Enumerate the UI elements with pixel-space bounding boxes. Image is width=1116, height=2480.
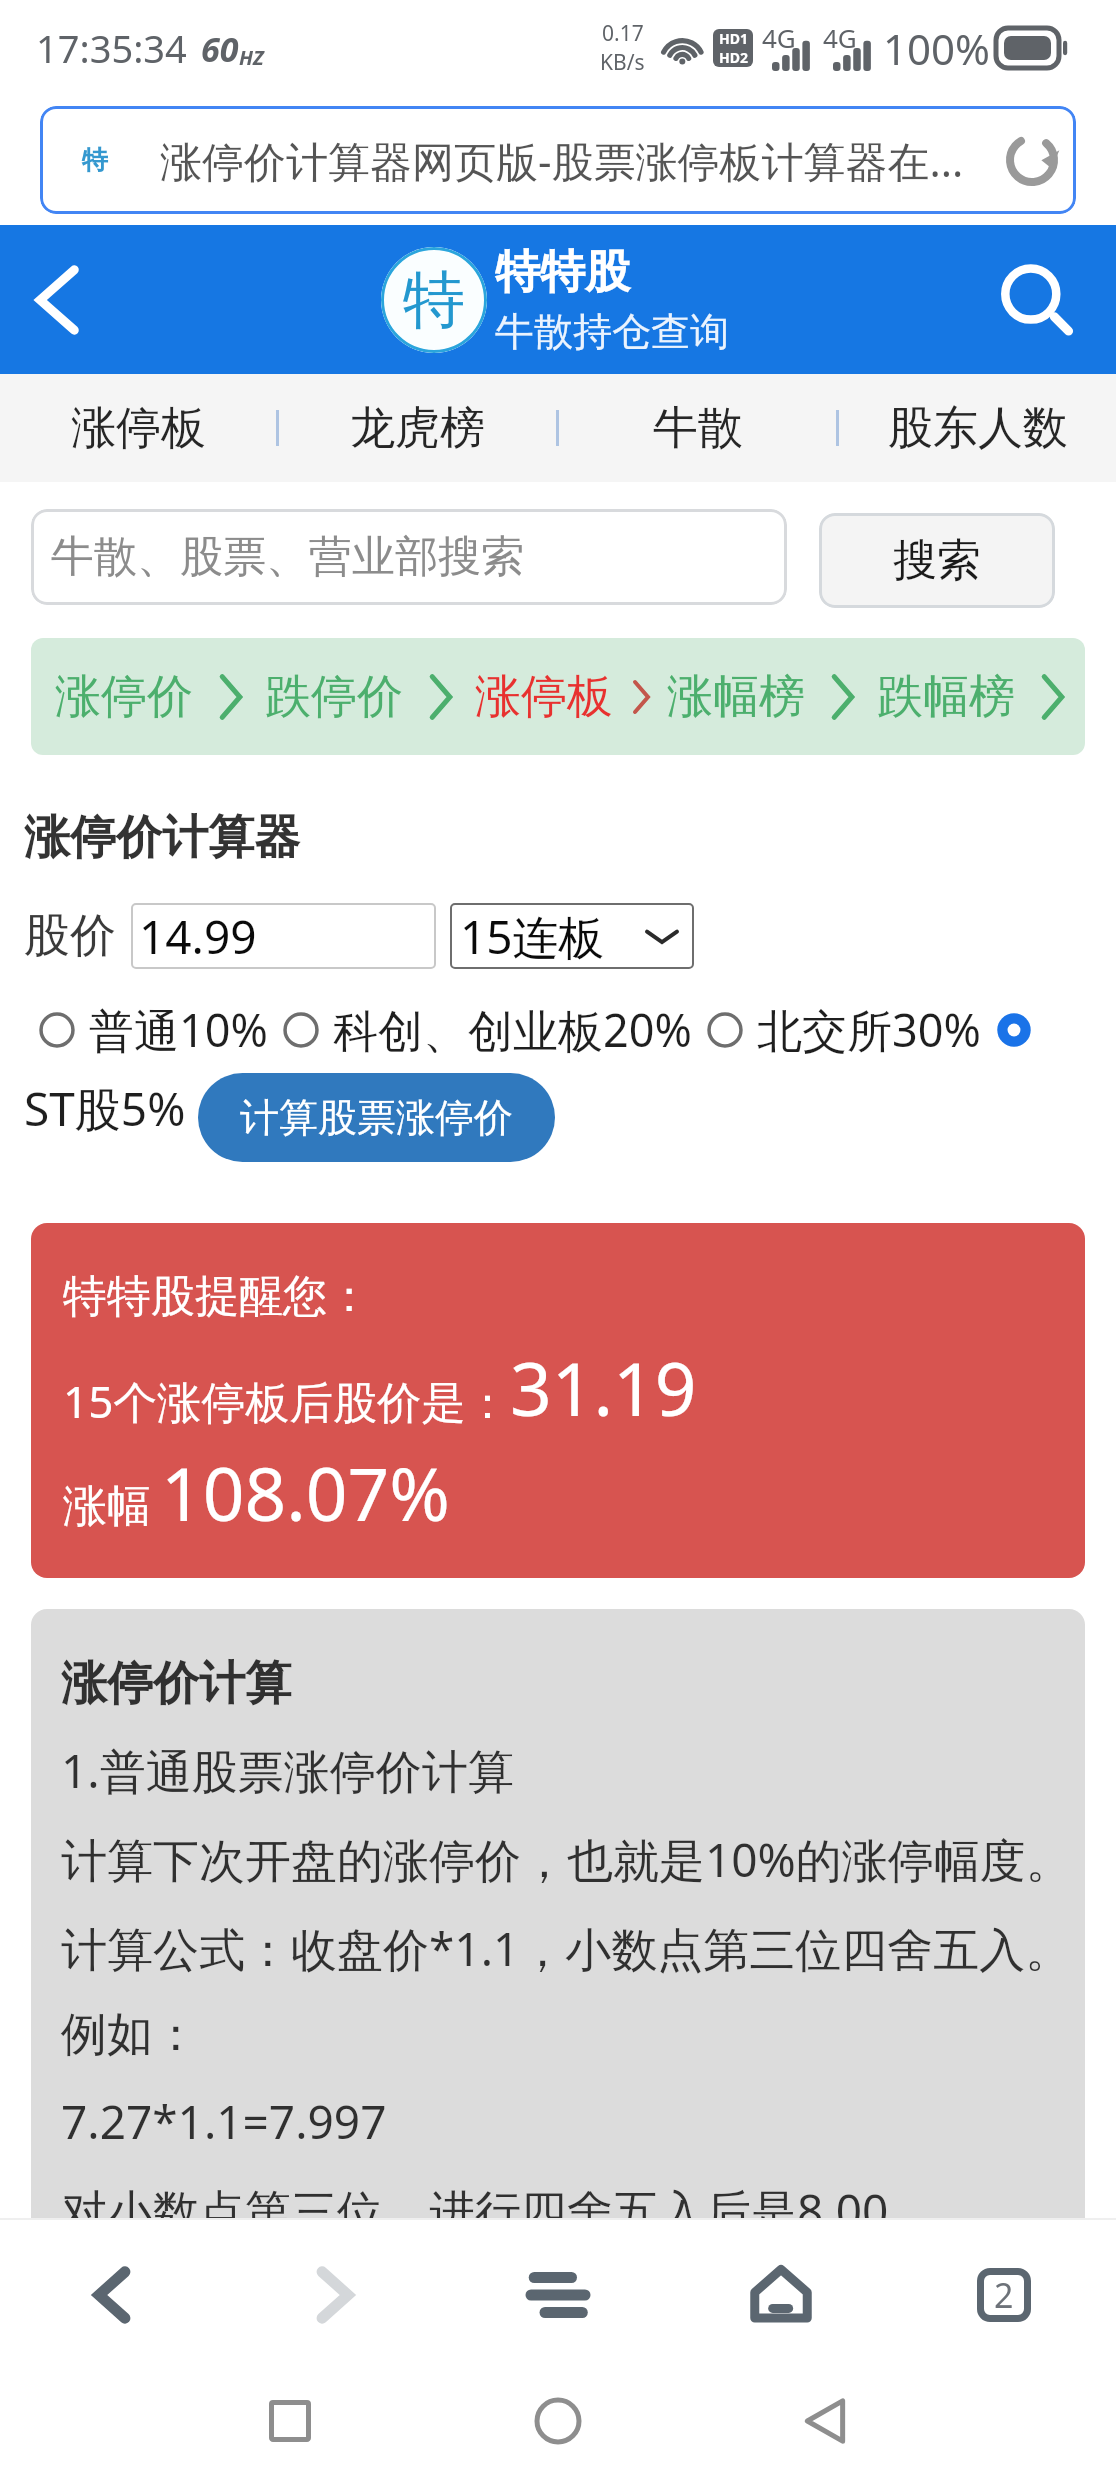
button[interactable] xyxy=(995,1011,1033,1049)
staticText: 31.19 xyxy=(510,1338,697,1437)
staticText: 60 xyxy=(201,26,239,72)
staticText: 搜索 xyxy=(893,533,981,588)
staticText: 股价 xyxy=(24,907,116,965)
staticText: 14.99 xyxy=(139,905,257,968)
button[interactable]: Back xyxy=(2,245,112,355)
staticText: 涨停价计算器网页版-股票涨停板计算器在... xyxy=(160,132,964,189)
button[interactable]: 搜索 xyxy=(819,513,1055,608)
staticText: HD1 xyxy=(719,29,748,48)
staticText: 计算股票涨停价 xyxy=(240,1093,513,1142)
button[interactable]: 股东人数 xyxy=(839,374,1116,482)
button[interactable]: 牛散、股票、营业部搜索 xyxy=(31,509,787,605)
staticText: 涨停价计算 xyxy=(61,1655,291,1713)
staticText: 17:35:34 xyxy=(36,22,187,74)
button[interactable]: 涨停价 xyxy=(53,668,195,726)
staticText: 15个涨停板后股价是： xyxy=(63,1371,510,1431)
staticText: 对小数点第三位，进行四舍五入后是8.00 xyxy=(61,2179,889,2242)
staticText: 4G xyxy=(823,20,857,55)
button[interactable] xyxy=(282,1011,320,1049)
button[interactable]: Recents xyxy=(235,2366,345,2476)
staticText: 计算下次开盘的涨停价，也就是10%的涨停幅度。 xyxy=(61,1828,1072,1891)
button[interactable]: 特 xyxy=(40,106,1076,214)
staticText: 涨停价计算器 xyxy=(24,809,300,867)
button[interactable]: 涨幅榜 xyxy=(665,668,807,726)
button[interactable]: 涨停板 xyxy=(473,668,615,726)
button[interactable]: Menu xyxy=(508,2245,608,2345)
staticText: 特特股提醒您： xyxy=(63,1269,371,1324)
staticText: 北交所30% xyxy=(757,999,981,1060)
staticText: 0.17 xyxy=(602,19,644,48)
staticText: 108.07% xyxy=(161,1443,451,1542)
button[interactable]: 龙虎榜 xyxy=(279,374,556,482)
button[interactable]: Search xyxy=(980,245,1090,355)
button[interactable]: 跌幅榜 xyxy=(875,668,1017,726)
button[interactable] xyxy=(706,1011,744,1049)
staticText: HZ xyxy=(239,44,264,71)
staticText: 龙虎榜 xyxy=(350,400,485,457)
staticText: 7.27*1.1=7.997 xyxy=(61,2090,387,2153)
staticText: 100% xyxy=(883,20,990,77)
staticText: 牛散 xyxy=(653,400,743,457)
staticText: 例如： xyxy=(61,2006,199,2064)
staticText: 普通10% xyxy=(89,999,268,1060)
button[interactable]: 14.99 xyxy=(131,903,436,969)
button[interactable]: 涨停板 xyxy=(0,374,276,482)
button[interactable]: 计算股票涨停价 xyxy=(198,1073,555,1162)
staticText: 牛散持仓查询 xyxy=(495,307,729,356)
staticText: 涨停板 xyxy=(71,400,206,457)
button[interactable]: Back xyxy=(770,2366,880,2476)
button[interactable]: 牛散 xyxy=(559,374,836,482)
staticText: 涨停板 xyxy=(475,668,613,726)
staticText: 涨停价 xyxy=(55,668,193,726)
button[interactable]: Forward xyxy=(285,2245,385,2345)
staticText: 4G xyxy=(762,20,796,55)
staticText: 特 xyxy=(403,261,465,339)
staticText: 跌幅榜 xyxy=(877,668,1015,726)
button[interactable]: Home xyxy=(731,2245,831,2345)
button[interactable]: 15连板 xyxy=(450,903,694,969)
button[interactable]: Back xyxy=(62,2245,162,2345)
staticText: 1.普通股票涨停价计算 xyxy=(61,1739,514,1802)
staticText: 跌停价 xyxy=(265,668,403,726)
staticText: HD2 xyxy=(719,48,748,67)
staticText: 计算公式：收盘价*1.1，小数点第三位四舍五入。 xyxy=(61,1917,1072,1980)
staticText: 特 xyxy=(82,144,108,177)
staticText: 科创、创业板20% xyxy=(333,999,692,1060)
button[interactable]: 跌停价 xyxy=(263,668,405,726)
button[interactable] xyxy=(38,1011,76,1049)
staticText: 15连板 xyxy=(460,905,605,968)
staticText: 涨幅榜 xyxy=(667,668,805,726)
staticText: ST股5% xyxy=(24,1077,186,1140)
button[interactable]: Home xyxy=(503,2366,613,2476)
button[interactable]: Refresh xyxy=(1002,130,1062,190)
staticText: 特特股 xyxy=(495,244,630,301)
staticText: KB/s xyxy=(600,48,645,77)
staticText: 股东人数 xyxy=(888,400,1068,457)
staticText: 涨幅 xyxy=(63,1479,151,1534)
button[interactable]: Tabs xyxy=(954,2245,1054,2345)
staticText: 2 xyxy=(994,2272,1014,2318)
staticText: 牛散、股票、营业部搜索 xyxy=(51,530,524,584)
